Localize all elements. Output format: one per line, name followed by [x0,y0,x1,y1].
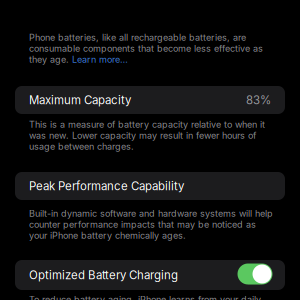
button[interactable]: Learn more [70,54,128,65]
staticText: Peak Performance Capability [29,179,184,193]
staticText: Phone batteries, like all rechargeable b… [29,32,263,65]
staticText: Maximum Capacity [29,93,131,107]
staticText: To reduce battery aging, iPhone learns f… [29,294,261,300]
staticText: Optimized Battery Charging [29,268,178,282]
staticText: This is a measure of battery capacity re… [29,119,265,152]
button[interactable]: Peak Performance Capability [15,172,285,200]
button[interactable]: Optimized Battery Charging, on [237,263,272,284]
staticText: Built-in dynamic software and hardware s… [29,208,273,241]
button[interactable]: Maximum Capacity [15,86,285,114]
button[interactable]: Optimized Battery Charging [15,260,285,290]
staticText: 83% [246,93,271,107]
